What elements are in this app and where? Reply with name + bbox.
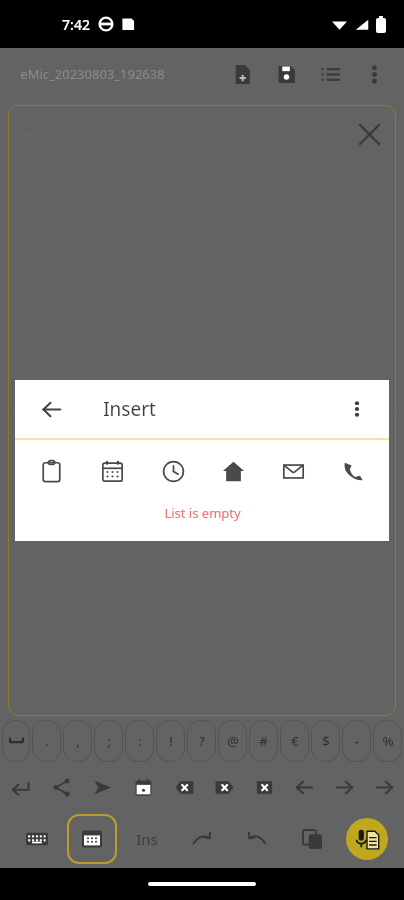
button[interactable]: Right [324, 764, 364, 810]
button[interactable]: Keyboard [17, 819, 57, 859]
staticText: ; [107, 732, 111, 750]
button[interactable]: Home [203, 440, 263, 502]
button[interactable]: # [249, 720, 278, 762]
staticText: eMic_20230803_192638 [20, 65, 165, 83]
button[interactable]: Calendar [82, 440, 143, 502]
button[interactable]: ; [94, 720, 123, 762]
button[interactable]: Backspace [164, 764, 204, 810]
button[interactable]: Phone [323, 440, 383, 502]
button[interactable]: Left [284, 764, 324, 810]
staticText: Insert [103, 396, 156, 422]
staticText: $ [322, 732, 330, 750]
staticText: % [382, 732, 394, 750]
staticText: , [76, 732, 80, 750]
button[interactable]: - [342, 720, 371, 762]
button[interactable]: Redo [180, 817, 224, 861]
button[interactable]: Record [346, 818, 388, 860]
button[interactable]: Ins [125, 817, 169, 861]
button[interactable]: Clear [244, 764, 284, 810]
staticText: # [259, 732, 268, 750]
button[interactable]: . [32, 720, 61, 762]
button[interactable] [2, 720, 30, 762]
button[interactable]: Calendar [123, 764, 164, 810]
button[interactable]: More [364, 764, 404, 810]
button[interactable]: ! [156, 720, 185, 762]
button[interactable]: @ [218, 720, 247, 762]
button[interactable]: More options [337, 389, 377, 429]
button[interactable]: List [308, 52, 352, 96]
button[interactable]: , [63, 720, 92, 762]
button[interactable]: Delete [204, 764, 244, 810]
staticText: . [45, 732, 49, 750]
button[interactable]: % [373, 720, 402, 762]
button[interactable]: € [280, 720, 309, 762]
button[interactable]: : [125, 720, 154, 762]
button[interactable]: Save [264, 52, 308, 96]
button[interactable]: Close [348, 113, 390, 155]
button[interactable]: Undo [235, 817, 279, 861]
button[interactable]: More options [352, 52, 396, 96]
button[interactable]: Back [31, 389, 71, 429]
staticText: € [291, 732, 299, 750]
button[interactable]: $ [311, 720, 340, 762]
staticText: - [354, 732, 359, 750]
staticText: Ins [136, 829, 158, 849]
button[interactable]: Clock [143, 440, 203, 502]
button[interactable]: Enter [0, 764, 41, 810]
button[interactable]: New document [220, 52, 264, 96]
staticText: List is empty [164, 504, 241, 522]
staticText: ! [169, 732, 173, 750]
button[interactable]: Send [82, 764, 123, 810]
button[interactable]: Clipboard [21, 440, 82, 502]
button[interactable]: Insert panel [67, 814, 117, 864]
staticText: ? [199, 732, 205, 750]
button[interactable]: ... [8, 105, 396, 716]
staticText: @ [227, 732, 239, 750]
staticText: 7:42 [62, 15, 90, 34]
button[interactable]: Email [263, 440, 323, 502]
button[interactable]: Copy [290, 817, 334, 861]
button[interactable]: Share [41, 764, 82, 810]
button[interactable]: ? [187, 720, 216, 762]
staticText: : [138, 732, 142, 750]
